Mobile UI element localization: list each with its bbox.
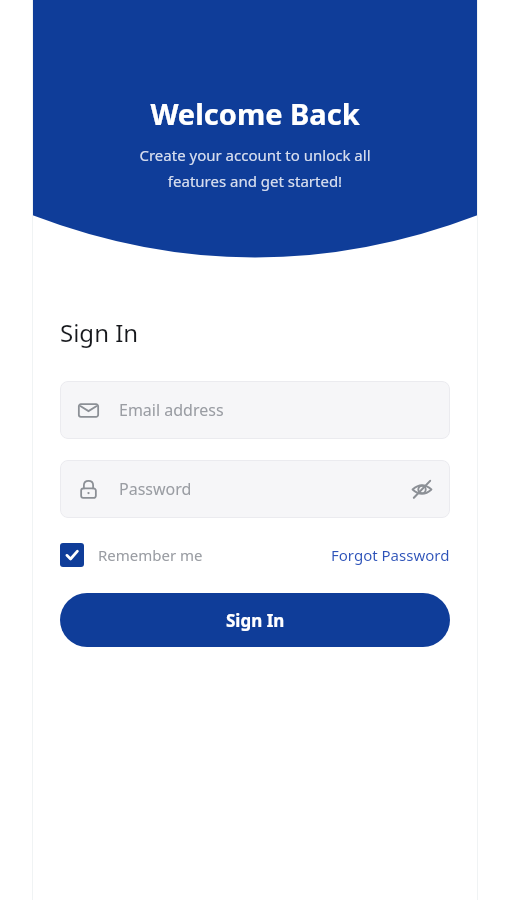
button[interactable]: Remember me bbox=[60, 537, 203, 573]
button[interactable]: Sign In bbox=[60, 593, 450, 647]
button[interactable]: Show password bbox=[408, 475, 436, 503]
button[interactable]: Email bbox=[60, 381, 450, 439]
button[interactable]: Forgot Password bbox=[331, 539, 450, 571]
staticText: Welcome Back bbox=[150, 94, 360, 133]
staticText: Email address bbox=[119, 399, 224, 421]
button[interactable]: Password bbox=[60, 460, 450, 518]
staticText: Forgot Password bbox=[331, 545, 450, 565]
staticText: Sign In bbox=[60, 316, 139, 349]
other: Password bbox=[78, 479, 99, 500]
staticText: Sign In bbox=[226, 609, 285, 632]
other: Email bbox=[78, 400, 99, 421]
staticText: Password bbox=[119, 478, 192, 500]
staticText: Create your account to unlock all featur… bbox=[90, 145, 420, 192]
staticText: Remember me bbox=[98, 545, 203, 565]
